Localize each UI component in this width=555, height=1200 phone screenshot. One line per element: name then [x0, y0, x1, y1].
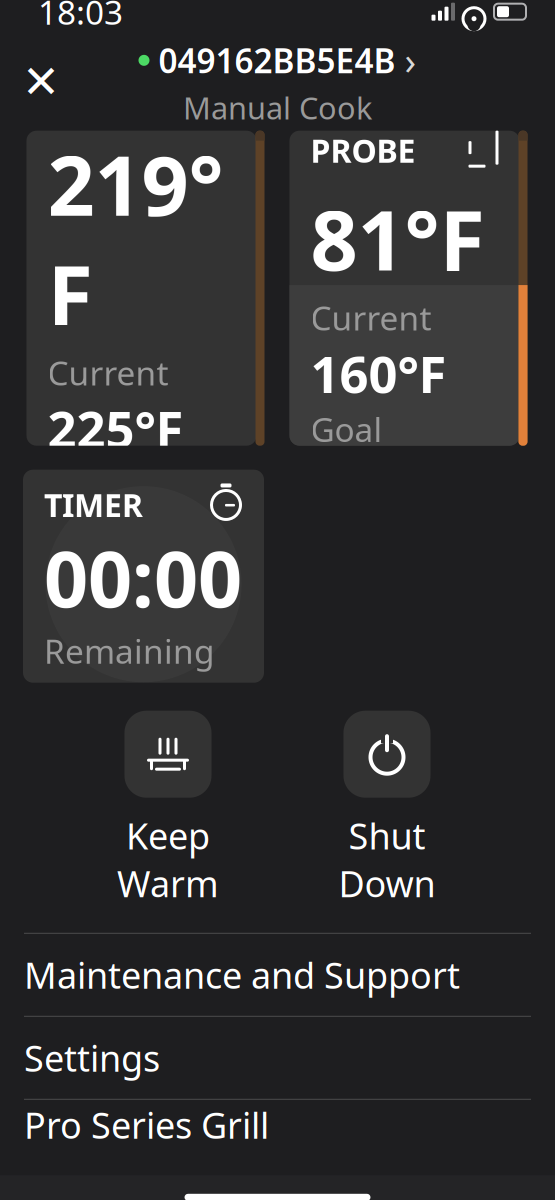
- staticText: PROBE: [310, 129, 415, 172]
- staticText: 160°F: [310, 340, 446, 407]
- staticText: 049162BB5E4B: [158, 38, 395, 82]
- staticText: Settings: [24, 1034, 160, 1082]
- staticText: Pro Series Grill: [24, 1101, 269, 1149]
- staticText: Maintenance and Support: [24, 951, 460, 999]
- staticText: Keep: [126, 812, 210, 859]
- staticText: Remaining: [44, 629, 215, 673]
- button[interactable]: Pro Series Grill: [0, 1084, 555, 1166]
- staticText: Set: [47, 462, 96, 506]
- button[interactable]: Shut: [338, 711, 435, 907]
- staticText: Shut: [348, 812, 425, 859]
- staticText: Current: [47, 350, 168, 395]
- staticText: Goal: [310, 407, 382, 451]
- button[interactable]: 049162BB5E4B: [138, 35, 416, 128]
- staticText: 81°F: [310, 184, 484, 293]
- staticText: ›: [404, 35, 416, 85]
- staticText: TIMER: [44, 483, 143, 526]
- staticText: 219°F: [47, 129, 223, 348]
- staticText: 18:03: [38, 0, 123, 34]
- staticText: 225°F: [47, 395, 183, 462]
- button[interactable]: Close: [14, 55, 68, 109]
- staticText: 00:00: [44, 526, 242, 629]
- button[interactable]: Settings: [0, 1017, 555, 1099]
- staticText: Current: [310, 295, 431, 340]
- staticText: Warm: [117, 859, 219, 907]
- staticText: Down: [338, 859, 435, 907]
- staticText: GRILL: [47, 74, 139, 117]
- staticText: ✕: [22, 56, 60, 107]
- button[interactable]: Keep: [117, 711, 219, 907]
- staticText: Manual Cook: [183, 87, 372, 128]
- button[interactable]: Maintenance and Support: [0, 934, 555, 1016]
